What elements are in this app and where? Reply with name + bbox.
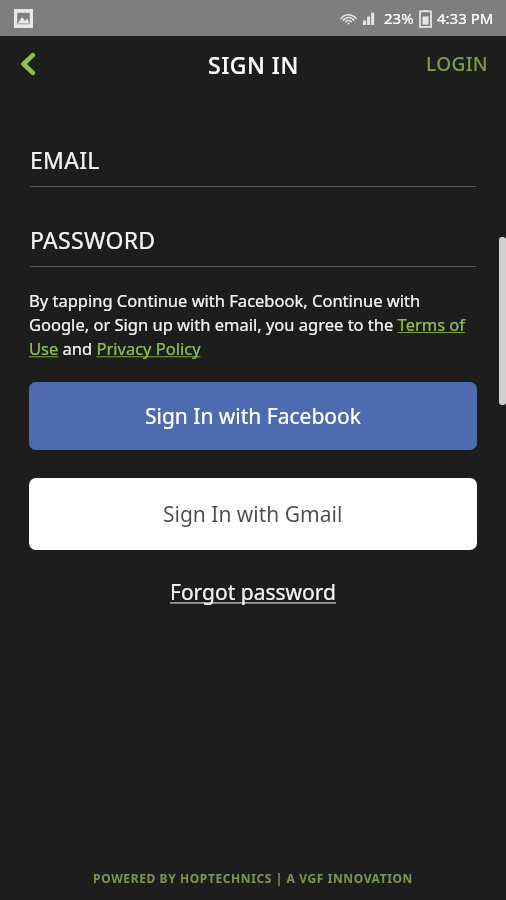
- staticText: Sign In with Gmail: [163, 500, 343, 529]
- button[interactable]: EMAIL: [0, 144, 506, 187]
- staticText: EMAIL: [30, 144, 100, 175]
- staticText: SIGN IN: [208, 49, 299, 80]
- staticText: POWERED BY HOPTECHNICS | A VGF INNOVATIO…: [93, 870, 413, 886]
- button[interactable]: PASSWORD: [0, 224, 506, 267]
- staticText: PASSWORD: [30, 224, 156, 255]
- button[interactable]: LOGIN: [408, 39, 506, 89]
- button[interactable]: Back: [0, 36, 56, 92]
- button[interactable]: Sign In with Facebook: [29, 382, 477, 450]
- button[interactable]: Sign In with Gmail: [29, 478, 477, 550]
- button[interactable]: Forgot password: [154, 572, 352, 613]
- button[interactable]: By tapping Continue with Facebook, Conti…: [0, 289, 506, 360]
- staticText: 4:33 PM: [437, 8, 494, 28]
- staticText: 23%: [384, 8, 414, 28]
- staticText: Sign In with Facebook: [145, 402, 361, 431]
- staticText: LOGIN: [426, 51, 488, 77]
- staticText: Forgot password: [170, 578, 336, 607]
- staticText: By tapping Continue with Facebook, Conti…: [29, 289, 477, 360]
